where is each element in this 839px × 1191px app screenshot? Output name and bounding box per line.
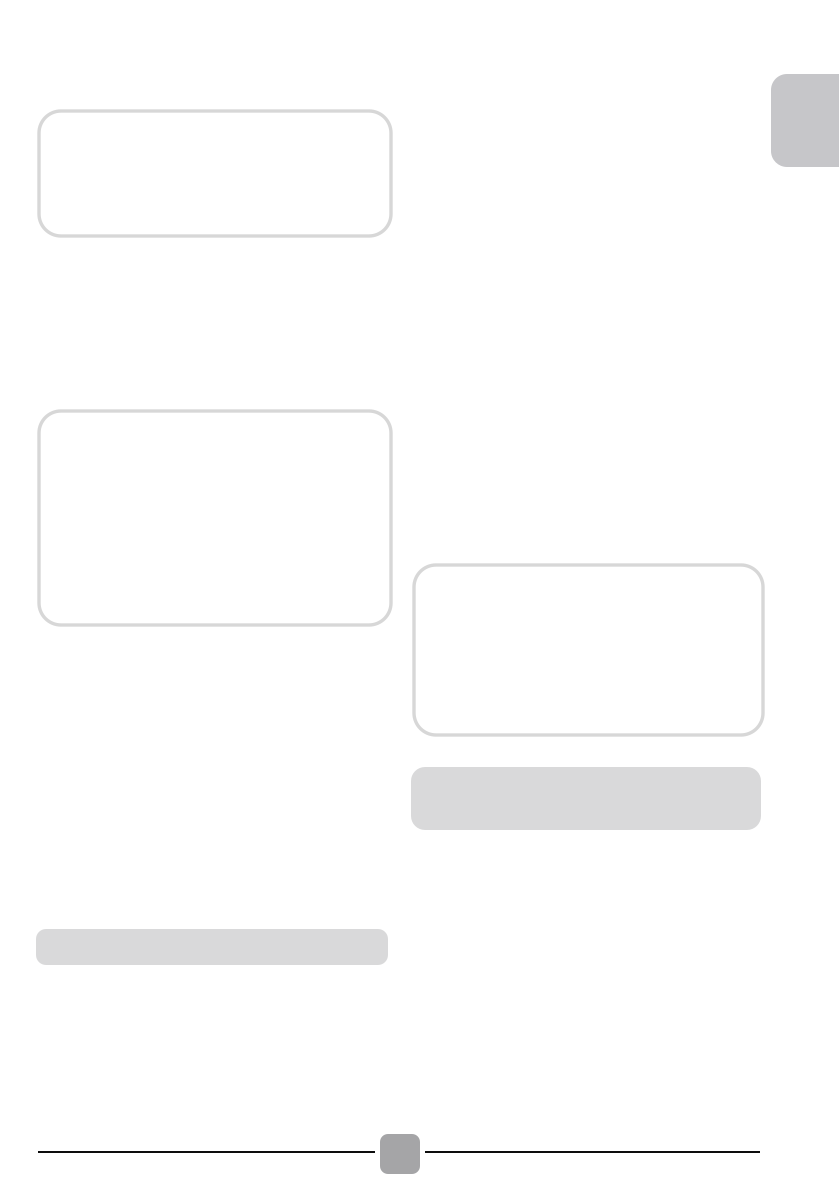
button[interactable]: Send <box>380 1134 420 1174</box>
button[interactable]: Profile <box>0 74 839 167</box>
